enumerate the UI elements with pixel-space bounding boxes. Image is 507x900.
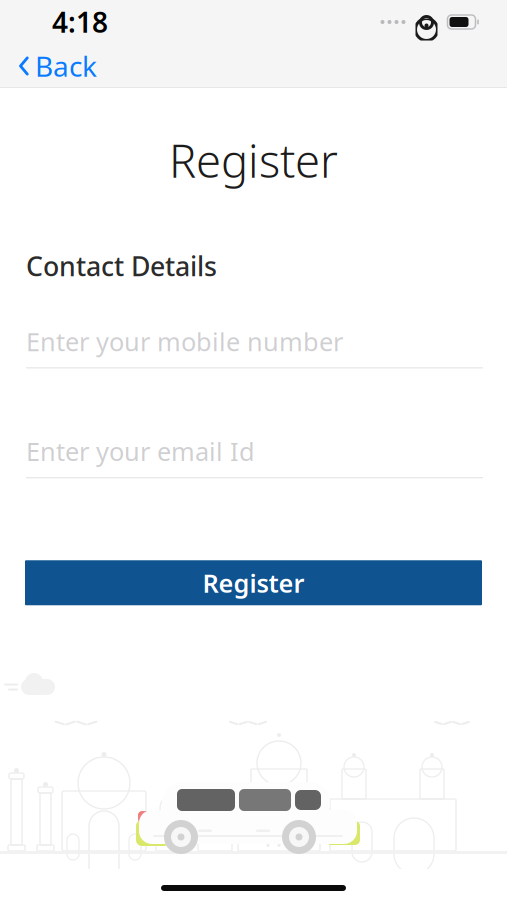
button[interactable]: Register xyxy=(25,560,482,605)
staticText: Enter your mobile number xyxy=(26,325,343,358)
staticText: Enter your email Id xyxy=(26,434,255,468)
staticText: Register xyxy=(169,130,338,190)
staticText: Back xyxy=(35,47,97,85)
button[interactable]: Back xyxy=(0,44,111,88)
staticText: Register xyxy=(202,566,304,600)
staticText: Contact Details xyxy=(26,248,217,284)
staticText: 4:18 xyxy=(52,3,108,41)
